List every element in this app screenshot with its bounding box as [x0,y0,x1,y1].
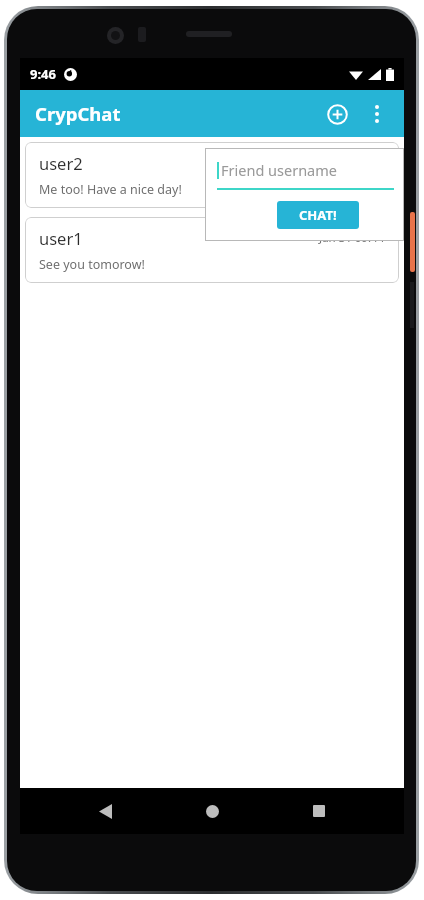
staticText: Jan 31 09:44 [319,230,385,246]
button[interactable]: Home [190,789,234,833]
staticText: CHAT! [299,206,337,224]
button[interactable]: CHAT! [277,201,359,229]
button[interactable]: Add friend [316,93,358,135]
button[interactable]: user2 [25,142,399,208]
staticText: Friend username [221,160,337,180]
staticText: user2 [39,152,83,174]
button[interactable]: Back [83,789,127,833]
staticText: See you tomorow! [39,256,145,273]
staticText: 9:46 [30,65,56,83]
staticText: user1 [39,227,83,249]
button[interactable]: Friend username [217,160,394,190]
button[interactable]: More options [358,95,396,133]
staticText: Me too! Have a nice day! [39,181,182,198]
staticText: CrypChat [35,101,121,126]
button[interactable]: Recent apps [297,789,341,833]
button[interactable]: user1 [25,217,399,283]
